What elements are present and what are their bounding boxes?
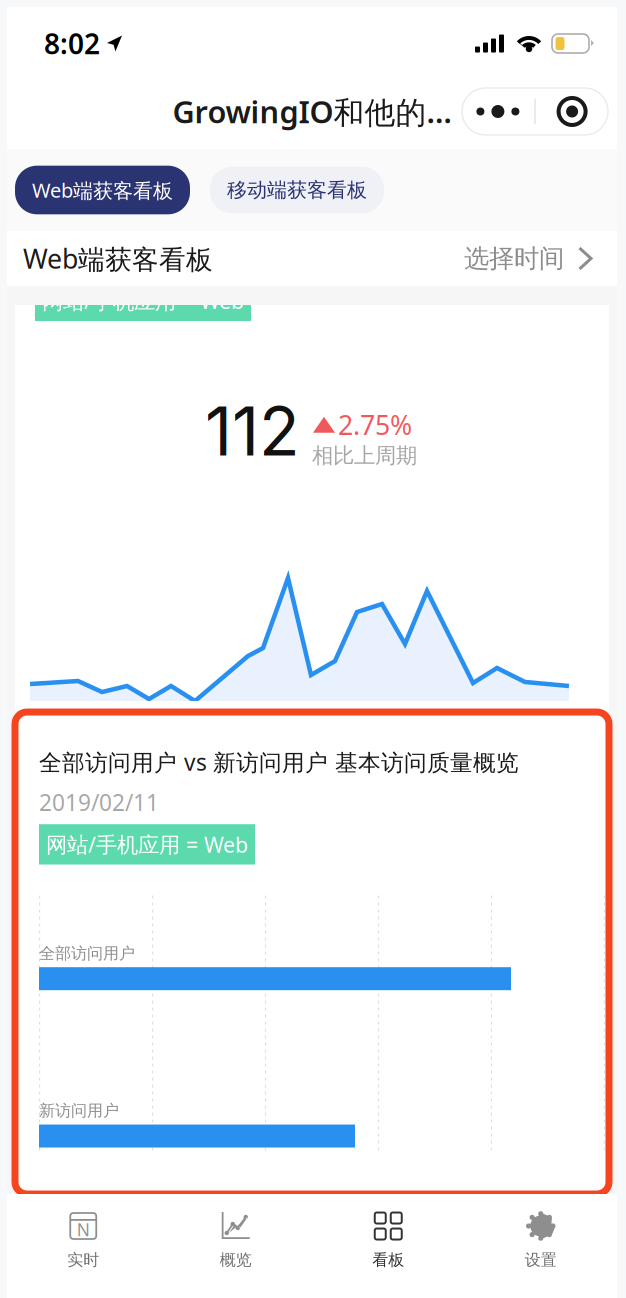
staticText: 实时 [67,1250,99,1270]
staticText: 设置 [525,1250,557,1270]
staticText: 网站/手机应用 = Web [46,830,248,858]
staticText: 相比上周期 [312,442,417,469]
button[interactable]: N [7,1210,159,1270]
staticText: 选择时间 [464,243,564,274]
button[interactable]: 移动端获客看板 [210,167,384,213]
staticText: Web端获客看板 [23,241,213,276]
button[interactable]: Web端获客看板 [15,166,190,214]
staticText: 看板 [372,1250,404,1270]
button[interactable]: 看板 [312,1210,464,1270]
button[interactable]: More options and close [462,88,608,135]
staticText: 2.75% [338,407,412,442]
staticText: 移动端获客看板 [227,178,367,202]
staticText: N [77,1218,90,1241]
staticText: 全部访问用户 [39,943,135,963]
button[interactable]: 概览 [159,1210,312,1270]
staticText: 112 [205,391,300,472]
staticText: 8:02 [44,25,100,62]
staticText: Web端获客看板 [32,177,173,203]
staticText: 2019/02/11 [39,787,159,817]
staticText: 网站/手机应用 = Web [42,287,244,315]
staticText: 概览 [220,1250,252,1270]
staticText: 新访问用户 [39,1101,119,1121]
button[interactable]: 选择时间 [464,243,593,274]
staticText: GrowingIO和他的… [172,91,451,132]
button[interactable]: 设置 [464,1210,617,1270]
staticText: 全部访问用户 vs 新访问用户 基本访问质量概览 [39,747,519,777]
